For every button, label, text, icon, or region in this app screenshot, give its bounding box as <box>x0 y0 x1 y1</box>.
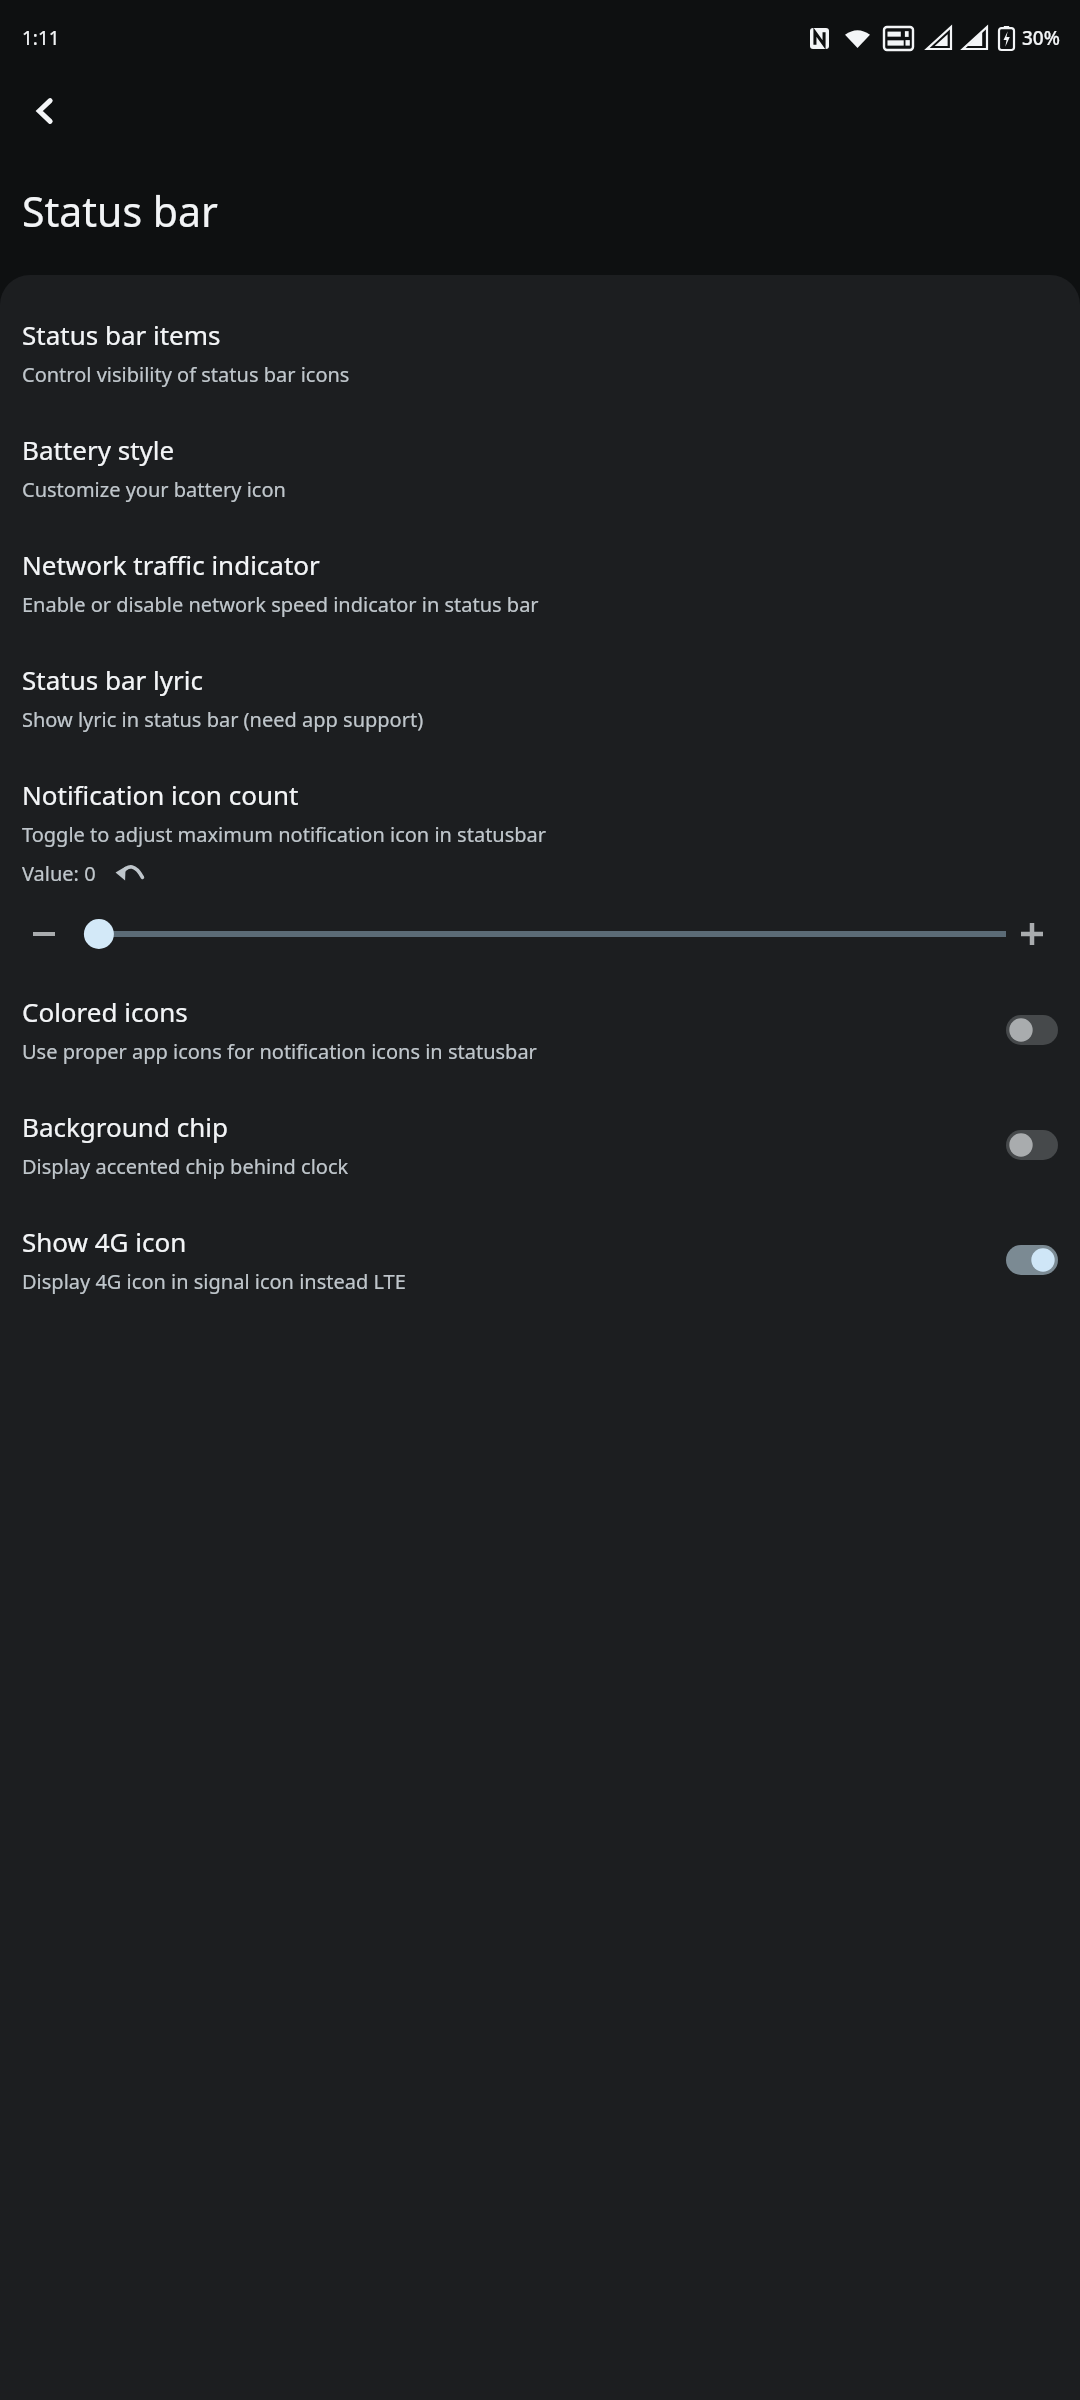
button[interactable]: Reset <box>112 856 146 890</box>
staticText: Control visibility of status bar icons <box>22 361 350 388</box>
staticText: Customize your battery icon <box>22 476 286 503</box>
button[interactable]: Battery style <box>0 428 1080 543</box>
button[interactable]: Background chip <box>0 1105 1080 1220</box>
button[interactable]: Increase <box>1006 908 1058 960</box>
staticText: Use proper app icons for notification ic… <box>22 1038 537 1065</box>
staticText: Toggle to adjust maximum notification ic… <box>22 821 547 848</box>
staticText: Status bar lyric <box>22 662 203 697</box>
staticText: Battery style <box>22 432 175 467</box>
button[interactable]: Colored icons <box>0 990 1080 1105</box>
staticText: Show 4G icon <box>22 1224 187 1259</box>
staticText: Display accented chip behind clock <box>22 1153 349 1180</box>
staticText: Status bar items <box>22 317 221 352</box>
button[interactable]: Back <box>10 75 82 147</box>
staticText: 1:11 <box>22 25 60 51</box>
button[interactable]: Notification icon count <box>0 773 1080 990</box>
button[interactable]: Status bar lyric <box>0 658 1080 773</box>
button[interactable]: Network traffic indicator <box>0 543 1080 658</box>
staticText: Colored icons <box>22 994 188 1029</box>
button[interactable]: Status bar items <box>0 313 1080 428</box>
staticText: Show lyric in status bar (need app suppo… <box>22 706 424 733</box>
staticText: 30% <box>1022 25 1060 51</box>
button[interactable]: Decrease <box>22 912 66 956</box>
staticText: Enable or disable network speed indicato… <box>22 591 539 618</box>
staticText: Status bar <box>22 183 218 239</box>
staticText: Value: 0 <box>22 860 96 887</box>
staticText: Notification icon count <box>22 777 299 812</box>
button[interactable]: Show 4G icon <box>0 1220 1080 1335</box>
staticText: Network traffic indicator <box>22 547 320 582</box>
staticText: Background chip <box>22 1109 228 1144</box>
button[interactable] <box>66 914 1006 954</box>
staticText: Display 4G icon in signal icon instead L… <box>22 1268 406 1295</box>
